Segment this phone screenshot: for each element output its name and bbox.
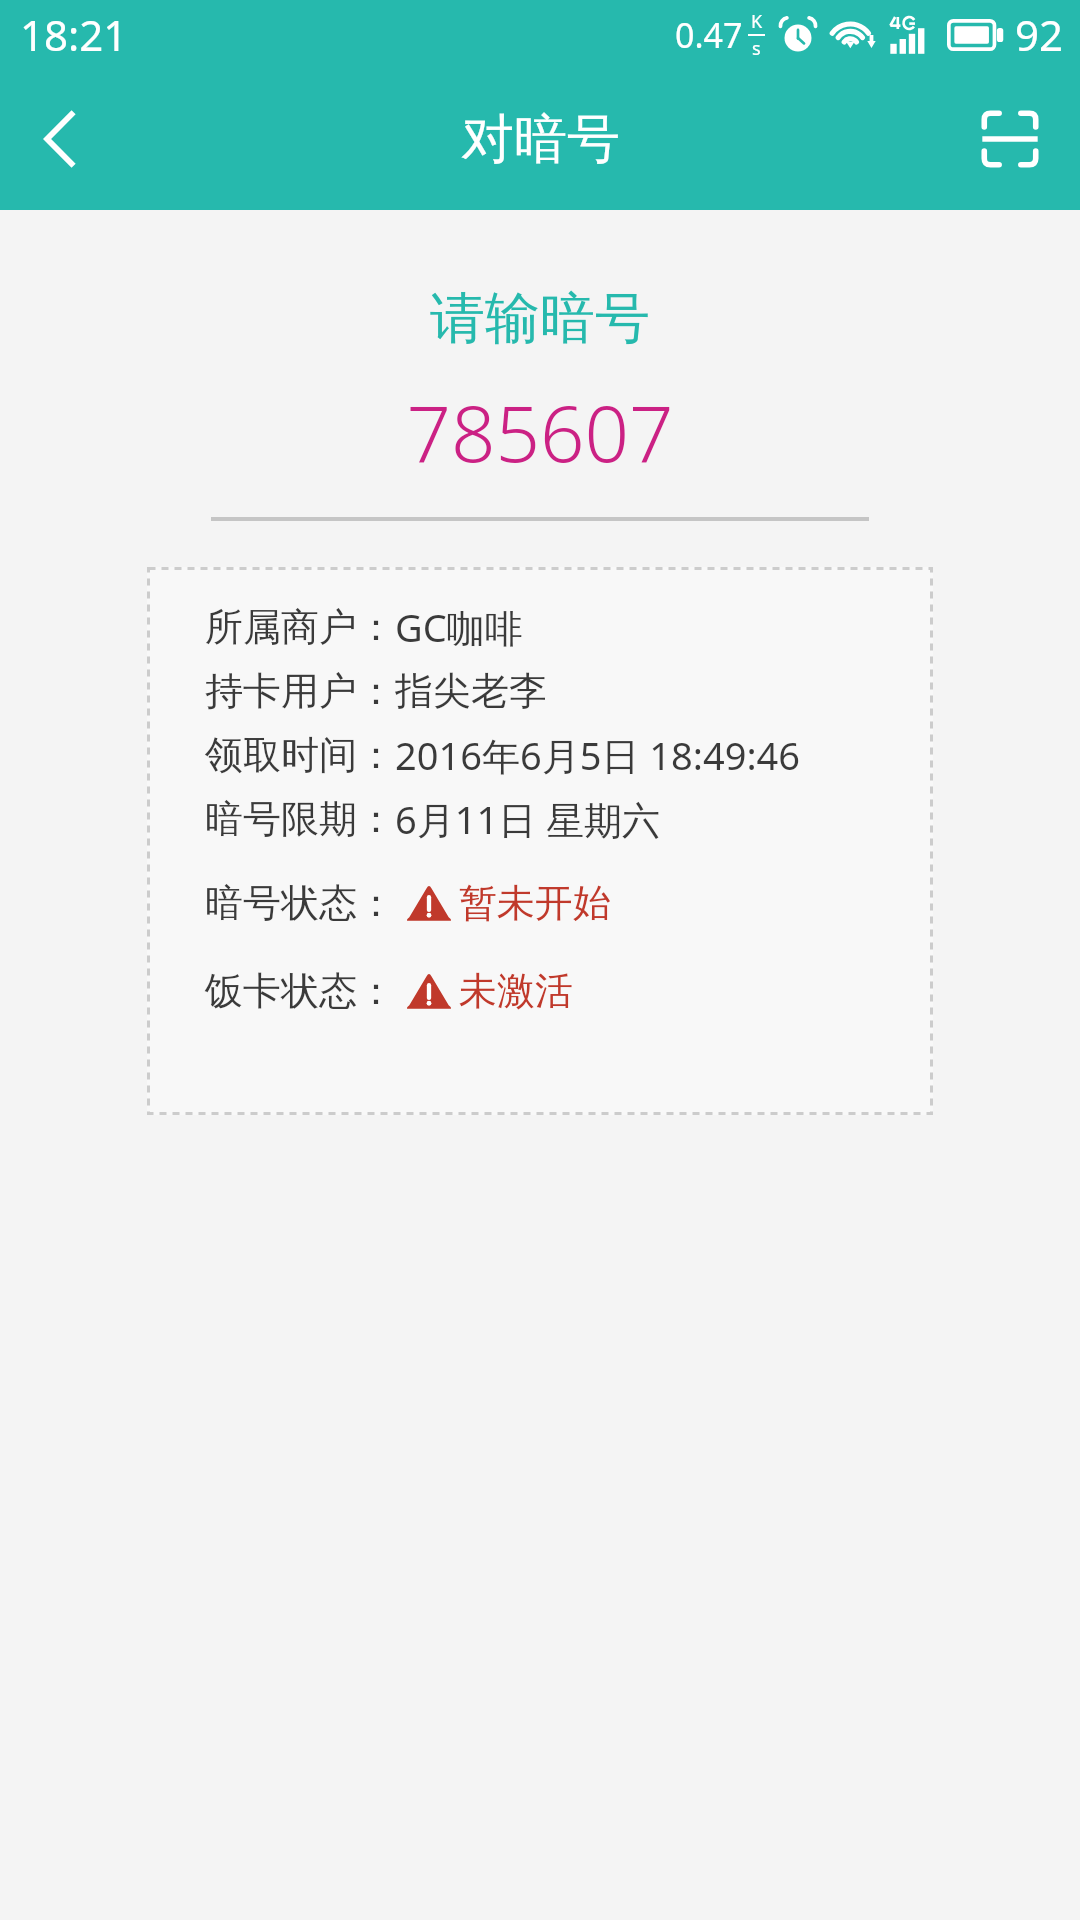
staticText: 暗号限期： — [205, 795, 395, 843]
staticText: 暂未开始 — [459, 879, 611, 927]
staticText: 对暗号 — [461, 106, 620, 173]
staticText: 0.47 — [675, 12, 743, 58]
staticText: 6月11日 星期六 — [395, 793, 661, 845]
staticText: 领取时间： — [205, 731, 395, 779]
staticText: s — [752, 36, 761, 61]
staticText: 饭卡状态： — [205, 967, 395, 1015]
staticText: GC咖啡 — [395, 601, 523, 653]
staticText: 暗号状态： — [205, 879, 395, 927]
button[interactable]: Back — [0, 68, 120, 210]
staticText: 持卡用户： — [205, 667, 395, 715]
staticText: 请输暗号 — [0, 284, 1080, 353]
staticText: 未激活 — [459, 967, 573, 1015]
button[interactable]: Scan QR code — [940, 68, 1080, 210]
staticText: 2016年6月5日 18:49:46 — [395, 729, 801, 781]
staticText: 指尖老李 — [395, 667, 547, 715]
staticText: K — [751, 9, 763, 34]
staticText: 92 — [1015, 6, 1064, 63]
staticText: 785607 — [0, 379, 1080, 485]
staticText: 所属商户： — [205, 603, 395, 651]
staticText: 18:21 — [20, 6, 128, 63]
